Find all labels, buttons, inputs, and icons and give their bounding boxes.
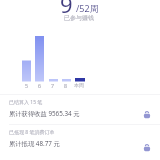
staticText: 已参与赚钱 <box>64 14 94 22</box>
staticText: 累计抵现 48.77 元 <box>9 139 60 148</box>
staticText: /52周 <box>76 2 99 14</box>
other: 查看明细 <box>143 111 151 119</box>
staticText: 9 <box>60 0 73 19</box>
staticText: 累计获得收益 9565.34 元 <box>9 109 80 118</box>
button[interactable]: 已抵现 8 笔消费订单 <box>0 126 160 156</box>
staticText: 本周 <box>72 82 86 88</box>
staticText: 已抵现 8 笔消费订单 <box>9 129 55 136</box>
staticText: 7 <box>46 82 59 90</box>
staticText: 6 <box>33 82 46 90</box>
staticText: 8 <box>59 82 72 90</box>
staticText: 已结算入 15 笔 <box>9 99 43 106</box>
button[interactable]: 已结算入 15 笔 <box>0 95 160 125</box>
staticText: 5 <box>20 82 33 90</box>
other: 查看明细 <box>143 144 151 152</box>
